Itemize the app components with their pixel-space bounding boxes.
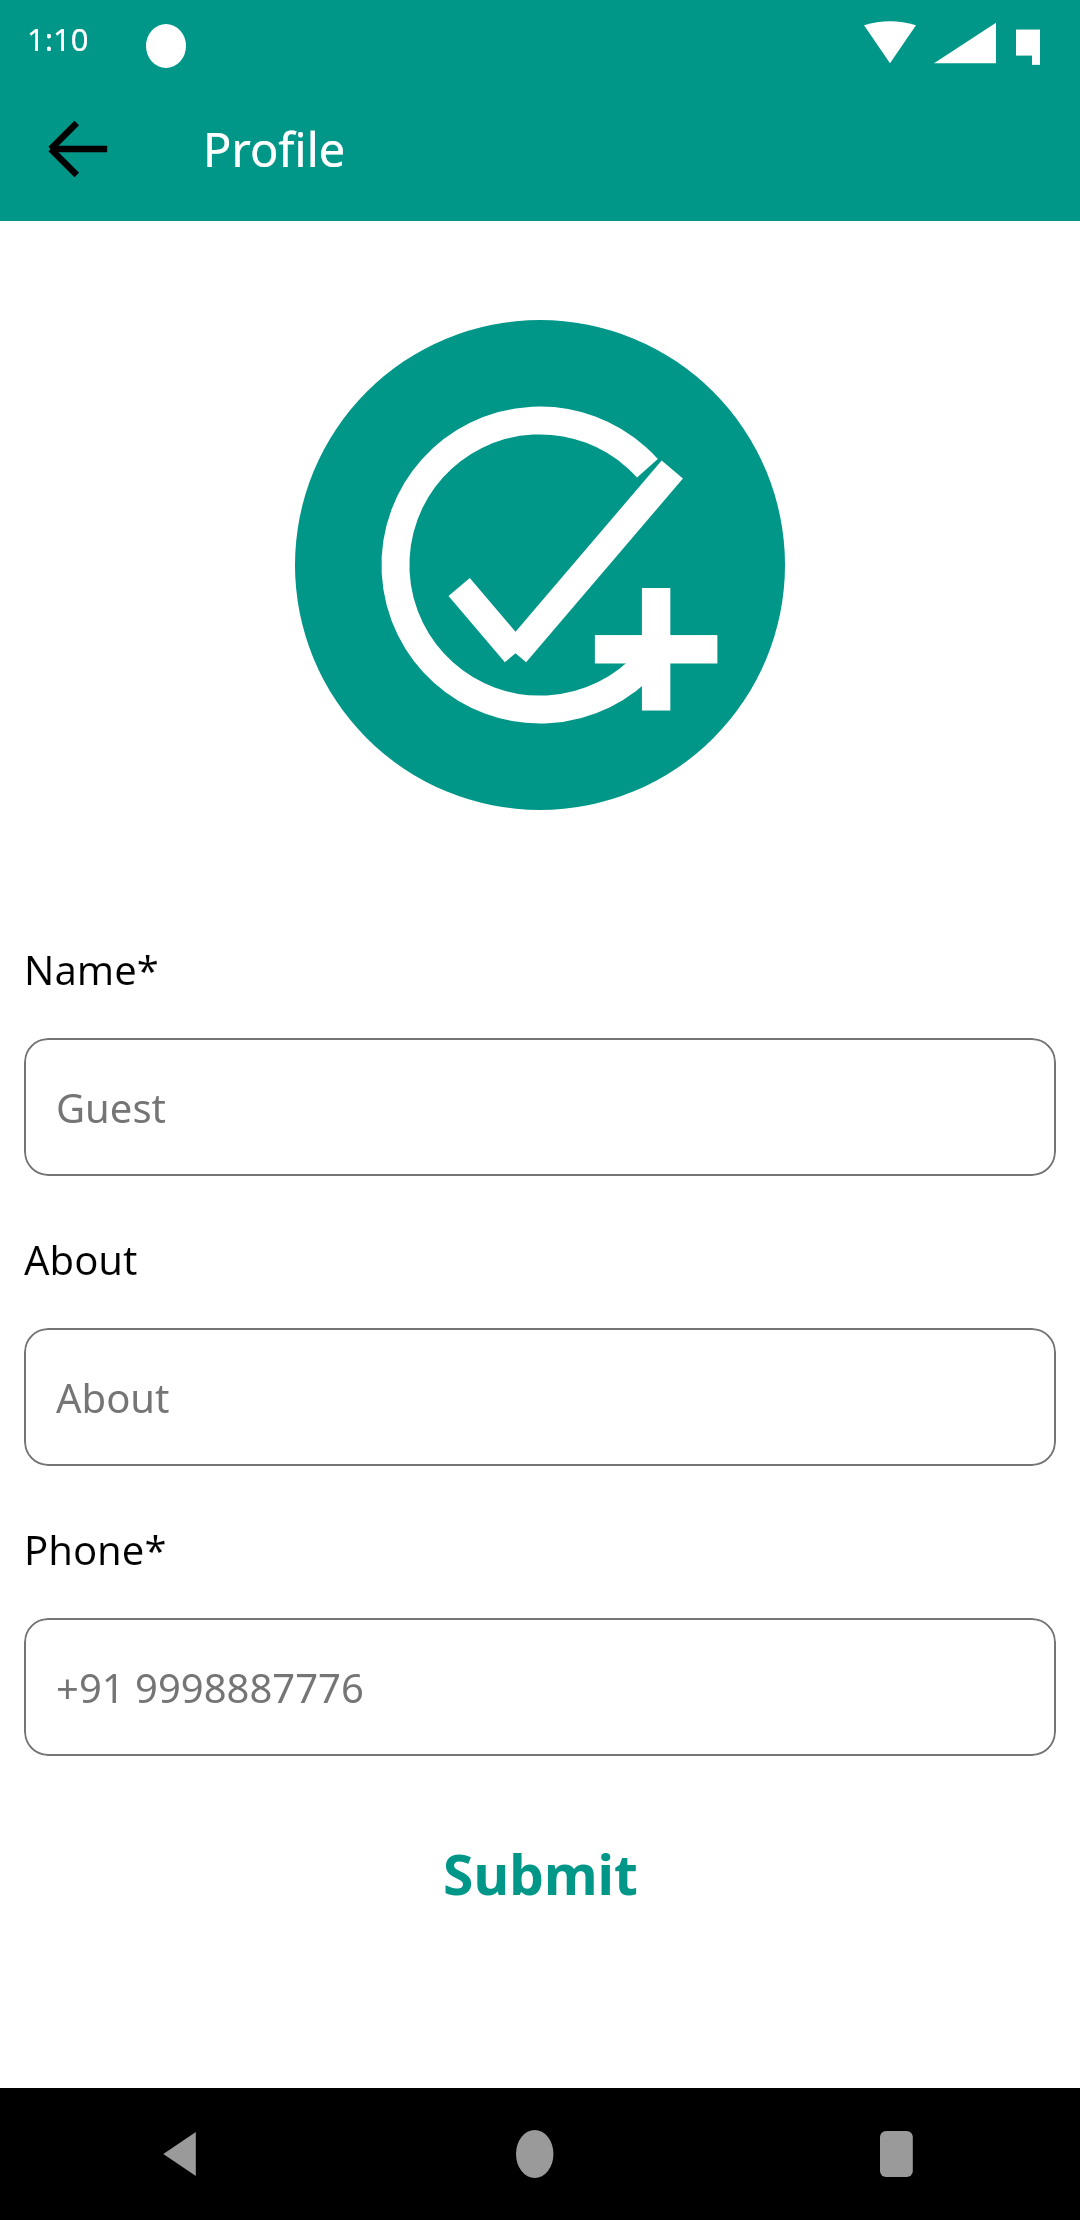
staticText: About <box>24 1232 138 1286</box>
staticText: Name* <box>24 942 159 996</box>
staticText: 1:10 <box>27 18 89 60</box>
button[interactable]: About <box>24 1328 1056 1466</box>
staticText: Submit <box>443 1836 638 1911</box>
button[interactable]: Back <box>24 95 132 203</box>
button[interactable]: Home <box>360 2088 720 2220</box>
button[interactable]: +91 9998887776 <box>24 1618 1056 1756</box>
staticText: About <box>56 1370 170 1424</box>
button[interactable]: Submit <box>24 1818 1056 1928</box>
button[interactable]: Recent apps <box>720 2088 1080 2220</box>
staticText: +91 9998887776 <box>56 1660 364 1714</box>
staticText: Guest <box>56 1080 166 1134</box>
button[interactable]: Back <box>0 2088 360 2220</box>
staticText: Profile <box>203 117 346 181</box>
button[interactable]: Guest <box>24 1038 1056 1176</box>
staticText: Phone* <box>24 1522 167 1576</box>
